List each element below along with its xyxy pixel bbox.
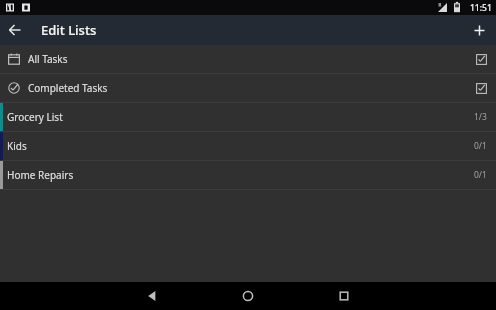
staticText: Edit Lists	[41, 21, 97, 39]
staticText: 0/1	[474, 169, 487, 181]
button[interactable]: Recent apps	[296, 282, 392, 310]
button[interactable]: Kids	[0, 132, 496, 160]
button[interactable]: Home Repairs	[0, 161, 496, 189]
staticText: 1/3	[474, 111, 487, 123]
staticText: Kids	[7, 139, 27, 153]
staticText: All Tasks	[28, 52, 68, 66]
button[interactable]: Back	[104, 282, 200, 310]
staticText: Completed Tasks	[28, 81, 108, 95]
staticText: Home Repairs	[7, 168, 74, 182]
button[interactable]: Home	[200, 282, 296, 310]
staticText: 0/1	[474, 140, 487, 152]
button[interactable]: Back	[0, 15, 30, 45]
staticText: Grocery List	[7, 110, 63, 124]
button[interactable]: Add list	[464, 15, 494, 45]
button[interactable]: All Tasks	[0, 45, 496, 73]
button[interactable]: Completed Tasks	[0, 74, 496, 102]
staticText: 11:51	[470, 2, 492, 14]
button[interactable]: Grocery List	[0, 103, 496, 131]
